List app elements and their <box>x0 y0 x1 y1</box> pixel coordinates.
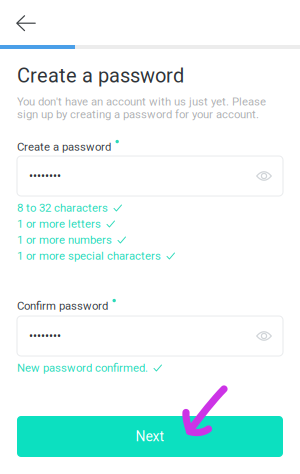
staticText: •••••••• <box>29 169 61 183</box>
staticText: Confirm password <box>17 299 108 313</box>
button[interactable]: Next <box>17 416 283 457</box>
staticText: 1 or more letters <box>17 217 101 231</box>
staticText: •••••••• <box>29 329 61 343</box>
staticText: Create a password <box>17 64 184 87</box>
button[interactable]: Back <box>0 0 48 45</box>
staticText: 8 to 32 characters <box>17 201 108 215</box>
staticText: Next <box>135 428 164 445</box>
staticText: New password confirmed. <box>17 361 148 375</box>
staticText: You don't have an account with us just y… <box>17 95 266 121</box>
staticText: 1 or more numbers <box>17 233 112 247</box>
staticText: Create a password <box>17 140 111 154</box>
staticText: 1 or more special characters <box>17 249 161 263</box>
